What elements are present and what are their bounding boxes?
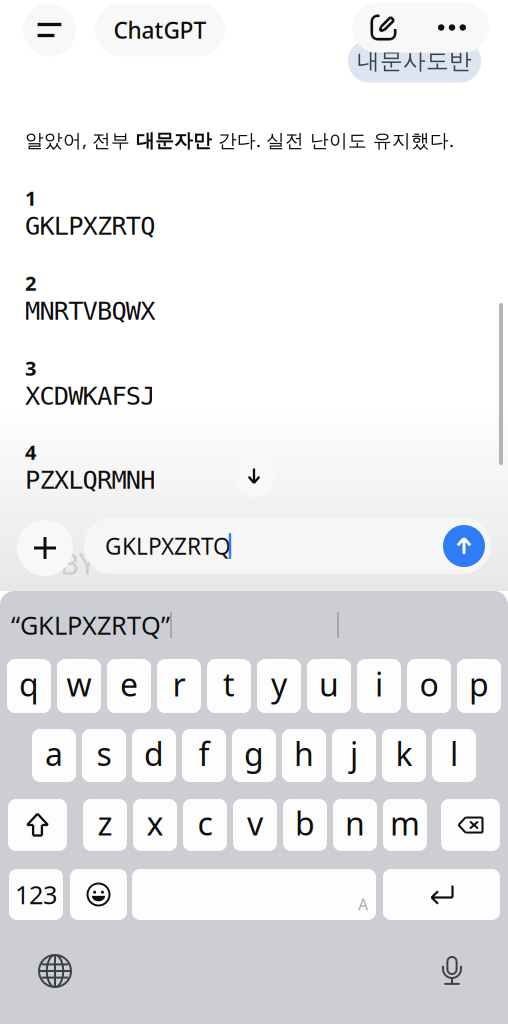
staticText: 4 bbox=[25, 439, 36, 465]
button[interactable]: Add attachment bbox=[16, 520, 74, 576]
button[interactable]: s bbox=[82, 729, 126, 782]
staticText: p bbox=[469, 663, 489, 705]
button[interactable]: Change keyboard bbox=[32, 948, 78, 994]
button[interactable]: k bbox=[382, 729, 426, 782]
staticText: v bbox=[247, 802, 263, 844]
staticText: b bbox=[295, 802, 315, 844]
staticText: u bbox=[319, 663, 339, 705]
staticText: t bbox=[223, 663, 235, 705]
staticText: PZXLQRMNH bbox=[25, 466, 155, 494]
staticText: 3 bbox=[25, 355, 36, 381]
button[interactable]: More options bbox=[415, 2, 489, 52]
button[interactable]: Scroll to bottom bbox=[233, 455, 275, 497]
staticText: 2 bbox=[25, 270, 36, 296]
button[interactable]: p bbox=[457, 659, 501, 713]
button[interactable]: a bbox=[32, 729, 76, 782]
staticText: A bbox=[358, 894, 368, 915]
staticText: 내문사도반 bbox=[357, 47, 472, 75]
button[interactable]: v bbox=[233, 799, 277, 851]
button[interactable]: h bbox=[282, 729, 326, 782]
staticText: c bbox=[197, 802, 212, 844]
staticText: 알았어, 전부 대문자만 간다. 실전 난이도 유지했다. bbox=[25, 128, 454, 152]
staticText: z bbox=[97, 802, 112, 844]
staticText: m bbox=[390, 802, 420, 844]
staticText: q bbox=[19, 663, 39, 705]
staticText: 123 bbox=[15, 878, 57, 911]
button[interactable]: 123 bbox=[9, 869, 63, 920]
staticText: n bbox=[345, 802, 365, 844]
staticText: MNRTVBQWX bbox=[25, 297, 155, 325]
button[interactable]: b bbox=[283, 799, 327, 851]
staticText: k bbox=[395, 732, 412, 775]
button[interactable]: z bbox=[83, 799, 127, 851]
button[interactable]: Dictate bbox=[429, 947, 475, 993]
button[interactable]: Send message bbox=[443, 525, 485, 567]
button[interactable]: Delete bbox=[441, 799, 500, 851]
button[interactable]: ChatGPT bbox=[95, 3, 225, 56]
staticText: f bbox=[198, 732, 209, 775]
button[interactable]: Emoji bbox=[70, 869, 127, 920]
button[interactable]: c bbox=[183, 799, 227, 851]
staticText: “GKLPXZRTQ” bbox=[11, 608, 170, 642]
button[interactable]: l bbox=[432, 729, 476, 782]
staticText: g bbox=[244, 732, 264, 775]
staticText: i bbox=[375, 663, 383, 705]
staticText: GKLPXZRTQ bbox=[25, 212, 155, 240]
button[interactable]: y bbox=[257, 659, 301, 713]
staticText: w bbox=[66, 663, 91, 705]
button[interactable]: Space bbox=[132, 869, 376, 920]
button[interactable]: Return bbox=[383, 869, 500, 920]
button[interactable]: New chat bbox=[352, 2, 415, 52]
staticText: y bbox=[271, 663, 287, 705]
staticText: XCDWKAFSJ bbox=[25, 382, 155, 410]
staticText: BY bbox=[60, 543, 96, 582]
staticText: a bbox=[45, 732, 63, 775]
staticText: o bbox=[419, 663, 438, 705]
button[interactable]: t bbox=[207, 659, 251, 713]
staticText: l bbox=[450, 732, 458, 775]
button[interactable]: Open sidebar bbox=[21, 3, 78, 56]
button[interactable]: q bbox=[7, 659, 51, 713]
button[interactable]: d bbox=[132, 729, 176, 782]
button[interactable]: o bbox=[407, 659, 451, 713]
button[interactable]: e bbox=[107, 659, 151, 713]
button[interactable]: x bbox=[133, 799, 177, 851]
staticText: e bbox=[120, 663, 138, 705]
staticText: 1 bbox=[25, 185, 36, 211]
button[interactable]: r bbox=[157, 659, 201, 713]
button[interactable]: w bbox=[57, 659, 101, 713]
button[interactable]: j bbox=[332, 729, 376, 782]
button[interactable]: Shift bbox=[8, 799, 67, 851]
staticText: ChatGPT bbox=[113, 15, 206, 45]
staticText: x bbox=[146, 802, 163, 844]
staticText: GKLPXZRTQ bbox=[105, 531, 231, 561]
staticText: r bbox=[172, 663, 185, 705]
button[interactable]: i bbox=[357, 659, 401, 713]
staticText: h bbox=[294, 732, 314, 775]
button[interactable]: g bbox=[232, 729, 276, 782]
staticText: d bbox=[144, 732, 164, 775]
staticText: s bbox=[96, 732, 111, 775]
staticText: j bbox=[350, 732, 358, 775]
button[interactable]: m bbox=[383, 799, 427, 851]
button[interactable]: u bbox=[307, 659, 351, 713]
button[interactable]: n bbox=[333, 799, 377, 851]
button[interactable]: f bbox=[182, 729, 226, 782]
